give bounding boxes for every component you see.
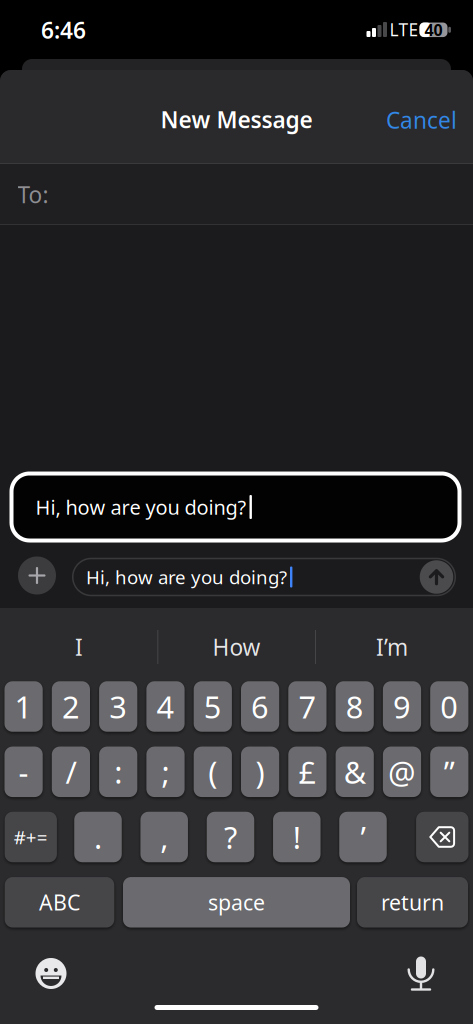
button[interactable]: ’ — [339, 812, 387, 862]
button[interactable]: , — [140, 812, 188, 862]
staticText: / — [65, 751, 76, 792]
staticText: LTE — [389, 18, 418, 41]
button[interactable]: @ — [383, 746, 421, 797]
staticText: 9 — [393, 686, 411, 727]
button[interactable]: Dictate — [407, 956, 434, 990]
staticText: . — [94, 817, 102, 857]
button[interactable]: How — [166, 624, 306, 670]
button[interactable]: Cancel — [386, 105, 457, 135]
button[interactable]: 5 — [194, 681, 232, 732]
button[interactable]: - — [4, 746, 43, 797]
staticText: I’m — [376, 632, 408, 662]
button[interactable]: £ — [288, 746, 326, 797]
button[interactable]: . — [74, 812, 122, 862]
staticText: 6 — [251, 686, 269, 727]
staticText: To: — [17, 179, 48, 209]
staticText: Hi, how are you doing? — [86, 565, 287, 589]
button[interactable]: Add attachment — [18, 556, 56, 594]
button[interactable]: ABC — [5, 877, 114, 927]
button[interactable]: 2 — [52, 681, 90, 732]
staticText: , — [160, 817, 168, 857]
button[interactable]: : — [99, 746, 137, 797]
staticText: 1 — [15, 686, 33, 727]
button[interactable]: 0 — [430, 681, 468, 732]
staticText: ABC — [39, 888, 80, 916]
staticText: space — [208, 888, 265, 916]
button[interactable]: ( — [194, 746, 232, 797]
button[interactable]: return — [357, 877, 468, 927]
button[interactable]: Emoji — [35, 958, 66, 989]
staticText: ; — [161, 751, 169, 792]
button[interactable]: Delete — [416, 812, 468, 862]
staticText: £ — [298, 751, 316, 792]
button[interactable]: & — [336, 746, 374, 797]
button[interactable]: ! — [273, 812, 321, 862]
staticText: 4 — [156, 686, 174, 727]
button[interactable]: / — [52, 746, 90, 797]
button[interactable]: #+= — [5, 812, 57, 862]
staticText: ( — [208, 751, 217, 792]
button[interactable]: ” — [430, 746, 468, 797]
staticText: @ — [388, 751, 416, 792]
button[interactable]: ? — [207, 812, 254, 862]
button[interactable]: 8 — [336, 681, 374, 732]
staticText: Cancel — [386, 105, 457, 135]
button[interactable]: Send — [420, 560, 453, 594]
staticText: 6:46 — [41, 15, 86, 45]
staticText: : — [114, 751, 122, 792]
button[interactable]: 1 — [4, 681, 43, 732]
button[interactable]: To — [0, 163, 473, 224]
button[interactable]: I — [9, 624, 149, 670]
button[interactable]: 3 — [99, 681, 137, 732]
button[interactable]: 9 — [383, 681, 421, 732]
staticText: ’ — [360, 817, 365, 857]
staticText: 7 — [298, 686, 316, 727]
button[interactable]: ; — [146, 746, 185, 797]
button[interactable]: space — [123, 877, 350, 927]
staticText: 5 — [204, 686, 222, 727]
staticText: I — [75, 632, 83, 662]
staticText: 3 — [109, 686, 127, 727]
button[interactable]: Message field — [72, 558, 456, 596]
staticText: 8 — [346, 686, 364, 727]
button[interactable]: 6 — [241, 681, 279, 732]
staticText: 2 — [62, 686, 80, 727]
button[interactable]: I’m — [322, 624, 462, 670]
button[interactable]: ) — [241, 746, 279, 797]
staticText: ! — [293, 817, 301, 857]
staticText: #+= — [14, 825, 48, 849]
staticText: New Message — [160, 104, 312, 134]
staticText: - — [19, 751, 29, 792]
staticText: & — [344, 751, 366, 792]
staticText: 0 — [440, 686, 458, 727]
staticText: Hi, how are you doing? — [35, 494, 246, 520]
staticText: ? — [224, 817, 237, 857]
staticText: ” — [444, 751, 455, 792]
staticText: 40 — [424, 19, 442, 40]
button[interactable]: 4 — [146, 681, 185, 732]
staticText: How — [212, 632, 260, 662]
staticText: ) — [256, 751, 265, 792]
staticText: return — [381, 888, 444, 916]
button[interactable]: 7 — [288, 681, 326, 732]
